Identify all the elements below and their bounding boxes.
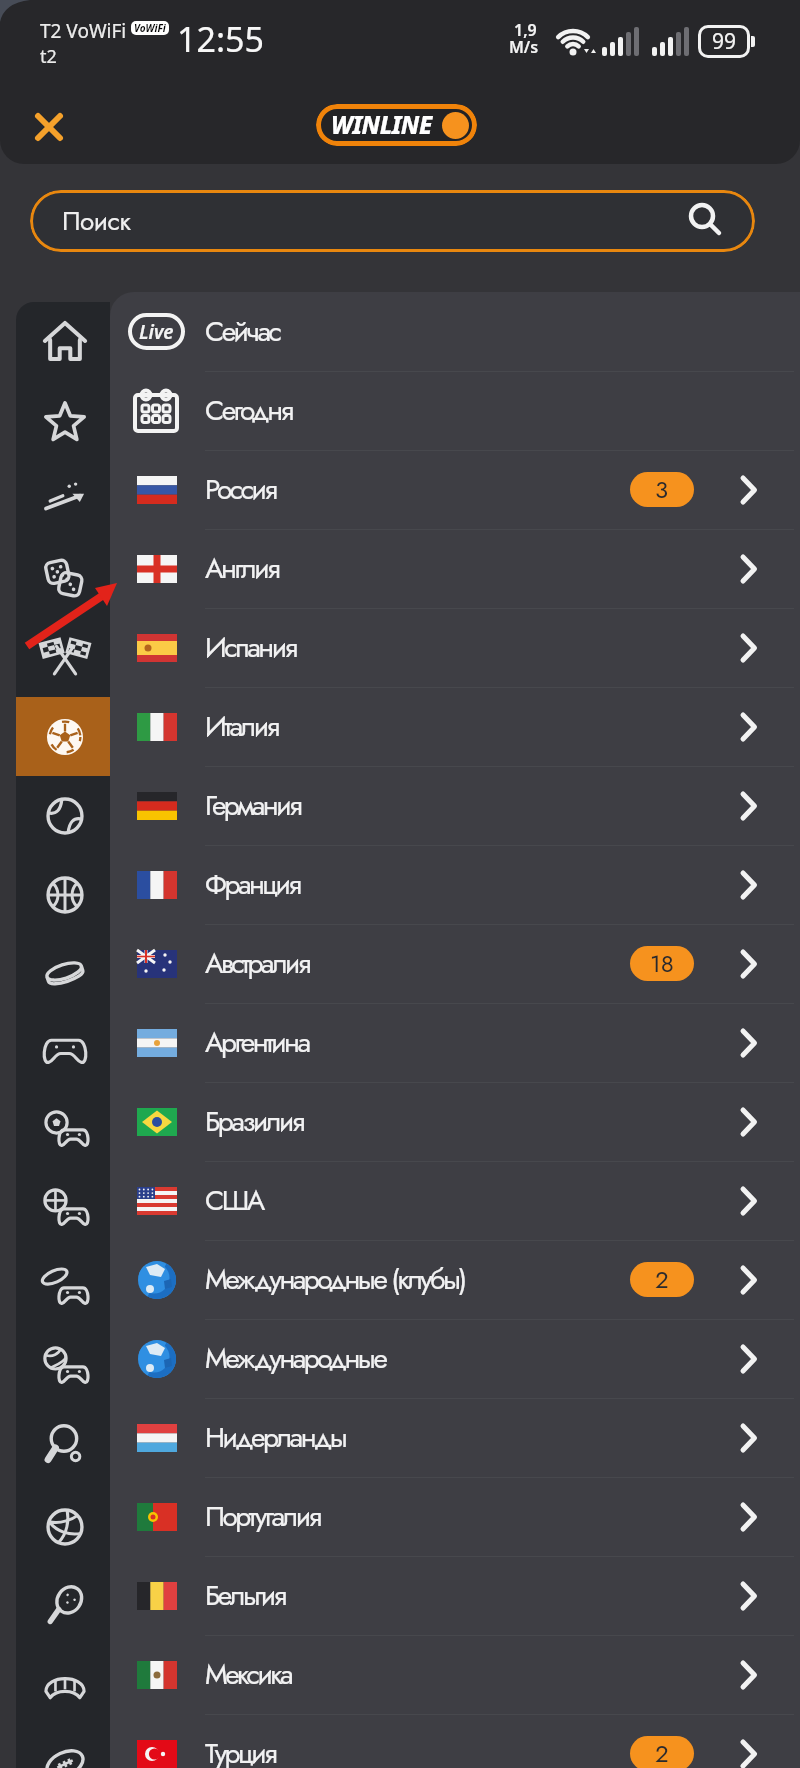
staticText: Франция (205, 864, 300, 904)
staticText: t2 (40, 44, 57, 69)
button[interactable]: Франция (110, 845, 800, 924)
button[interactable]: Международные (110, 1319, 800, 1398)
staticText: Аргентина (205, 1022, 309, 1062)
button[interactable] (16, 1171, 110, 1250)
staticText: Международные (205, 1338, 386, 1378)
button[interactable]: Бразилия (110, 1082, 800, 1161)
button[interactable] (16, 1724, 110, 1768)
button[interactable] (16, 934, 110, 1013)
staticText: T2 VoWiFi (40, 18, 127, 44)
button[interactable]: Международные (клубы) (110, 1240, 800, 1319)
button[interactable] (16, 1645, 110, 1724)
button[interactable]: Сегодня (110, 371, 800, 450)
button[interactable]: Турция (110, 1714, 800, 1768)
staticText: Бразилия (205, 1101, 303, 1141)
staticText: Португалия (205, 1496, 320, 1536)
button[interactable]: Поиск (30, 190, 755, 252)
button[interactable] (16, 618, 110, 697)
button[interactable] (16, 1250, 110, 1329)
button[interactable]: США (110, 1161, 800, 1240)
staticText: 3 (655, 472, 669, 507)
staticText: Австралия (205, 943, 309, 983)
staticText: 2 (655, 1262, 669, 1297)
staticText: VoWiFi (134, 21, 166, 35)
button[interactable]: Португалия (110, 1477, 800, 1556)
button[interactable] (16, 1487, 110, 1566)
button[interactable] (16, 460, 110, 539)
button[interactable]: Нидерланды (110, 1398, 800, 1477)
button[interactable]: Италия (110, 687, 800, 766)
button[interactable]: Аргентина (110, 1003, 800, 1082)
staticText: Поиск (62, 202, 131, 240)
staticText: Мексика (205, 1654, 292, 1694)
button[interactable] (16, 1013, 110, 1092)
staticText: 12:55 (177, 16, 264, 62)
staticText: Испания (205, 627, 296, 667)
button[interactable]: Англия (110, 529, 800, 608)
button[interactable] (16, 539, 110, 618)
button[interactable]: Live (110, 292, 800, 371)
button[interactable]: WINLINE (316, 104, 477, 146)
staticText: M/s (509, 36, 539, 58)
button[interactable]: Австралия (110, 924, 800, 1003)
button[interactable] (16, 381, 110, 460)
button[interactable]: Россия (110, 450, 800, 529)
button[interactable] (16, 776, 110, 855)
button[interactable] (16, 855, 110, 934)
staticText: 2 (655, 1736, 669, 1768)
button[interactable] (24, 102, 74, 152)
staticText: 99 (712, 27, 737, 56)
staticText: Англия (205, 548, 278, 588)
staticText: WINLINE (331, 108, 432, 141)
button[interactable] (16, 1408, 110, 1487)
staticText: 1,9 (514, 19, 537, 41)
button[interactable]: Испания (110, 608, 800, 687)
button[interactable]: Мексика (110, 1635, 800, 1714)
staticText: США (205, 1180, 263, 1220)
staticText: 18 (650, 946, 674, 981)
staticText: Нидерланды (205, 1417, 346, 1457)
button[interactable]: Германия (110, 766, 800, 845)
button[interactable]: Бельгия (110, 1556, 800, 1635)
staticText: Германия (205, 785, 300, 825)
staticText: Турция (205, 1733, 276, 1768)
staticText: Live (139, 319, 174, 345)
button[interactable] (16, 1329, 110, 1408)
staticText: Бельгия (205, 1575, 285, 1615)
button[interactable] (16, 697, 110, 776)
staticText: Россия (205, 469, 276, 509)
button[interactable] (16, 1566, 110, 1645)
staticText: Международные (клубы) (205, 1259, 465, 1299)
staticText: Сегодня (205, 390, 292, 430)
staticText: Италия (205, 706, 278, 746)
button[interactable] (16, 1092, 110, 1171)
staticText: Сейчас (205, 311, 280, 351)
button[interactable] (16, 302, 110, 381)
